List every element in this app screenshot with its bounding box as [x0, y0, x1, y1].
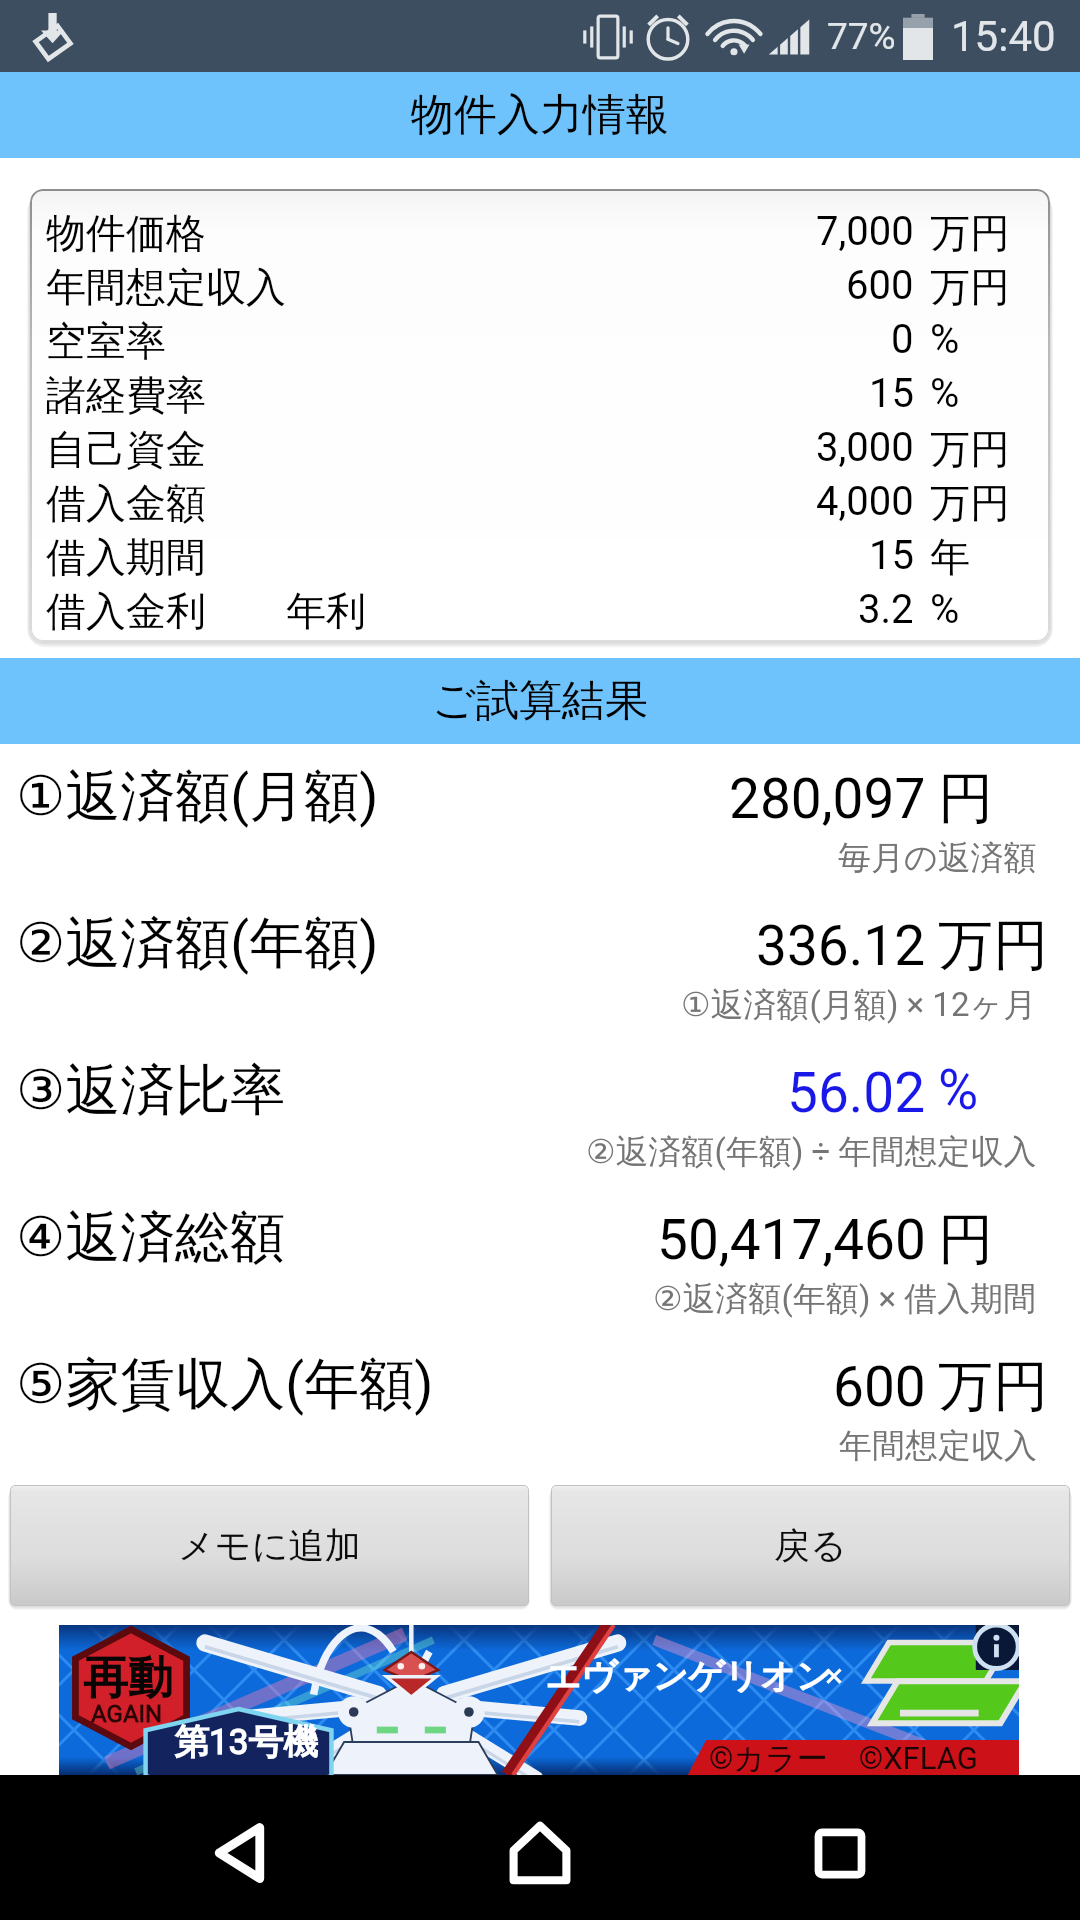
staticText: 物件入力情報	[411, 88, 669, 142]
staticText: 56.02	[787, 1061, 926, 1125]
staticText: ③返済比率	[16, 1056, 286, 1125]
staticText: 7,000	[816, 208, 914, 255]
staticText: 万円	[930, 208, 1010, 258]
staticText: 借入期間	[46, 532, 206, 582]
button[interactable]: ⑤家賃収入(年額)	[0, 1332, 1080, 1479]
button[interactable]: 戻る	[551, 1485, 1070, 1606]
staticText: 600	[833, 1355, 926, 1419]
staticText: 諸経費率	[46, 370, 206, 420]
staticText: 年間想定収入	[46, 262, 286, 312]
staticText: 年間想定収入	[839, 1425, 1037, 1467]
staticText: 万円	[938, 1352, 1048, 1421]
button[interactable]: ③返済比率	[0, 1038, 1080, 1185]
staticText: ②返済額(年額) ÷ 年間想定収入	[586, 1131, 1037, 1173]
staticText: ②返済額(年額) × 借入期間	[653, 1278, 1037, 1320]
staticText: エヴァンゲリオン	[545, 1654, 832, 1698]
staticText: ご試算結果	[432, 674, 649, 728]
staticText: %	[930, 316, 960, 363]
staticText: ⑤家賃収入(年額)	[16, 1350, 434, 1419]
staticText: 3.2	[858, 586, 914, 633]
button[interactable]: Back	[120, 1775, 360, 1920]
staticText: メモに追加	[178, 1523, 361, 1568]
staticText: 借入金額	[46, 478, 206, 528]
staticText: 物件価格	[46, 208, 206, 258]
staticText: 万円	[938, 911, 1048, 980]
button[interactable]: メモに追加	[10, 1485, 529, 1606]
staticText: %	[930, 586, 960, 633]
staticText: 空室率	[46, 316, 166, 366]
staticText: ④返済総額	[16, 1203, 286, 1272]
button[interactable]: ④返済総額	[0, 1185, 1080, 1332]
staticText: 第13号機	[174, 1720, 319, 1764]
button[interactable]: Home	[420, 1775, 660, 1920]
staticText: 自己資金	[46, 424, 206, 474]
staticText: %	[930, 370, 960, 417]
staticText: 万円	[930, 478, 1010, 528]
button[interactable]: Advertisement	[59, 1625, 1019, 1775]
staticText: AGAIN	[91, 1700, 163, 1728]
staticText: 4,000	[816, 478, 914, 525]
staticText: 円	[938, 764, 993, 833]
staticText: 毎月の返済額	[838, 837, 1037, 879]
staticText: 3,000	[816, 424, 914, 471]
staticText: 再動	[83, 1650, 173, 1707]
staticText: ©カラー ©XFLAG	[709, 1739, 978, 1775]
staticText: ①返済額(月額) × 12ヶ月	[681, 984, 1037, 1026]
staticText: 15	[869, 370, 914, 417]
staticText: 年	[930, 532, 970, 582]
staticText: 15:40	[951, 12, 1056, 61]
staticText: 万円	[930, 424, 1010, 474]
staticText: 15	[869, 532, 914, 579]
staticText: 戻る	[774, 1523, 847, 1568]
staticText: 借入金利 年利	[46, 586, 366, 636]
staticText: 0	[891, 316, 914, 363]
staticText: ×	[825, 1655, 844, 1695]
staticText: ②返済額(年額)	[16, 909, 379, 978]
staticText: 50,417,460	[657, 1208, 926, 1272]
staticText: 万円	[930, 262, 1010, 312]
staticText: 円	[938, 1205, 993, 1274]
staticText: 280,097	[729, 767, 926, 831]
button[interactable]: ②返済額(年額)	[0, 891, 1080, 1038]
staticText: ①返済額(月額)	[16, 762, 379, 831]
staticText: %	[938, 1058, 979, 1122]
staticText: 336.12	[756, 914, 926, 978]
button[interactable]: Recent apps	[720, 1775, 960, 1920]
button[interactable]: ①返済額(月額)	[0, 744, 1080, 891]
staticText: 600	[846, 262, 914, 309]
staticText: 77%	[827, 15, 896, 58]
